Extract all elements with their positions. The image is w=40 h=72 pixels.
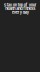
staticText: Stay on top of your health and fitness e…: [3, 3, 36, 15]
